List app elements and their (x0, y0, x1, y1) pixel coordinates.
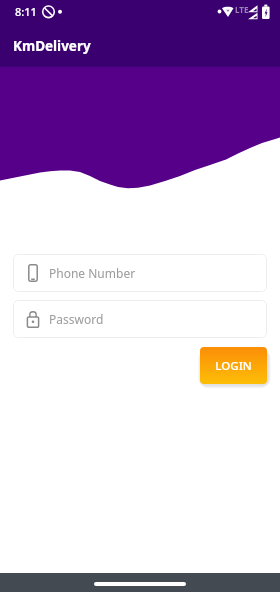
staticText: Password (49, 311, 104, 327)
button[interactable]: LOGIN (200, 347, 267, 384)
staticText: 8:11 (15, 4, 37, 19)
staticText: Phone Number (49, 265, 136, 281)
other: Do not disturb (0, 0, 280, 24)
staticText: KmDelivery (13, 37, 91, 55)
button[interactable]: Password (13, 300, 267, 338)
button[interactable]: Phone Number (13, 254, 267, 292)
staticText: LTE (235, 4, 249, 15)
other: Home (94, 582, 186, 586)
staticText: LOGIN (215, 358, 252, 374)
other: Wifi, signal and battery (0, 0, 280, 24)
